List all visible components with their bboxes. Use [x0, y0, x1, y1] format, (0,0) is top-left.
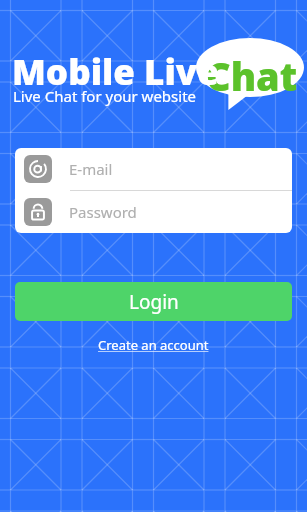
staticText: Password — [69, 202, 137, 222]
button[interactable]: Password — [15, 191, 292, 233]
staticText: E-mail — [69, 159, 113, 179]
staticText: Mobile Live — [12, 48, 219, 96]
button[interactable]: E-mail — [15, 148, 292, 191]
staticText: Live Chat for your website — [13, 86, 197, 106]
staticText: Login — [129, 289, 179, 315]
staticText: Chat — [206, 50, 298, 102]
staticText: Create an account — [98, 336, 209, 354]
button[interactable]: Login — [15, 282, 292, 321]
other: E-mail — [24, 155, 52, 183]
button[interactable]: Create an account — [92, 333, 215, 357]
other: Password — [24, 198, 52, 226]
